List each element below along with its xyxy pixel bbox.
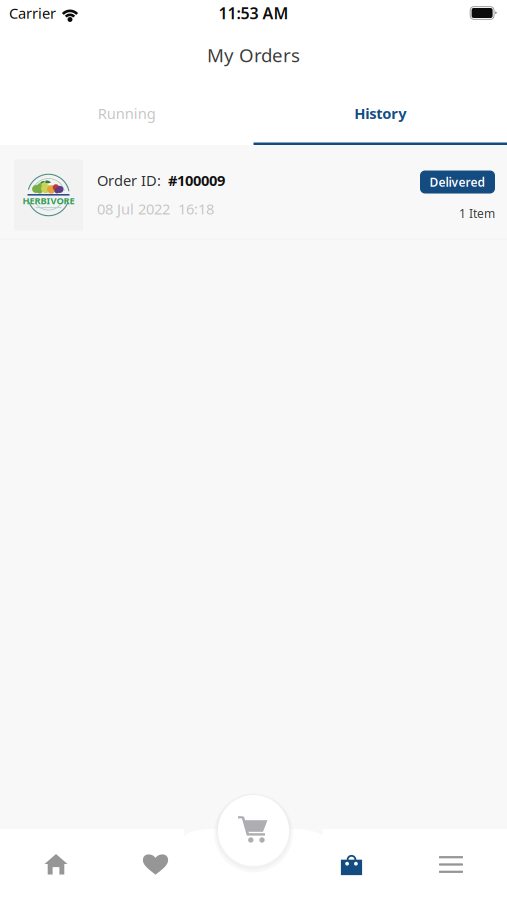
staticText: History xyxy=(354,103,406,123)
staticText: HERBIVORE xyxy=(22,194,74,207)
staticText: Order ID: xyxy=(97,170,161,190)
button[interactable]: History xyxy=(253,84,507,145)
staticText: 08 Jul 2022 16:18 xyxy=(97,199,214,218)
staticText: Carrier xyxy=(9,3,56,23)
staticText: Running xyxy=(98,103,156,123)
button[interactable]: Orders xyxy=(308,829,395,900)
button[interactable]: Cart xyxy=(213,790,293,870)
staticText: 1 Item xyxy=(459,205,495,221)
staticText: My Orders xyxy=(207,43,300,67)
staticText: Delivered xyxy=(429,174,485,190)
staticText: #100009 xyxy=(168,170,225,190)
button[interactable]: Home xyxy=(0,829,112,900)
button[interactable]: Favourites xyxy=(112,829,199,900)
staticText: 11:53 AM xyxy=(218,2,288,24)
button[interactable]: HERBIVORE xyxy=(0,145,507,239)
button[interactable]: Running xyxy=(0,84,253,145)
button[interactable]: Menu xyxy=(395,829,507,900)
